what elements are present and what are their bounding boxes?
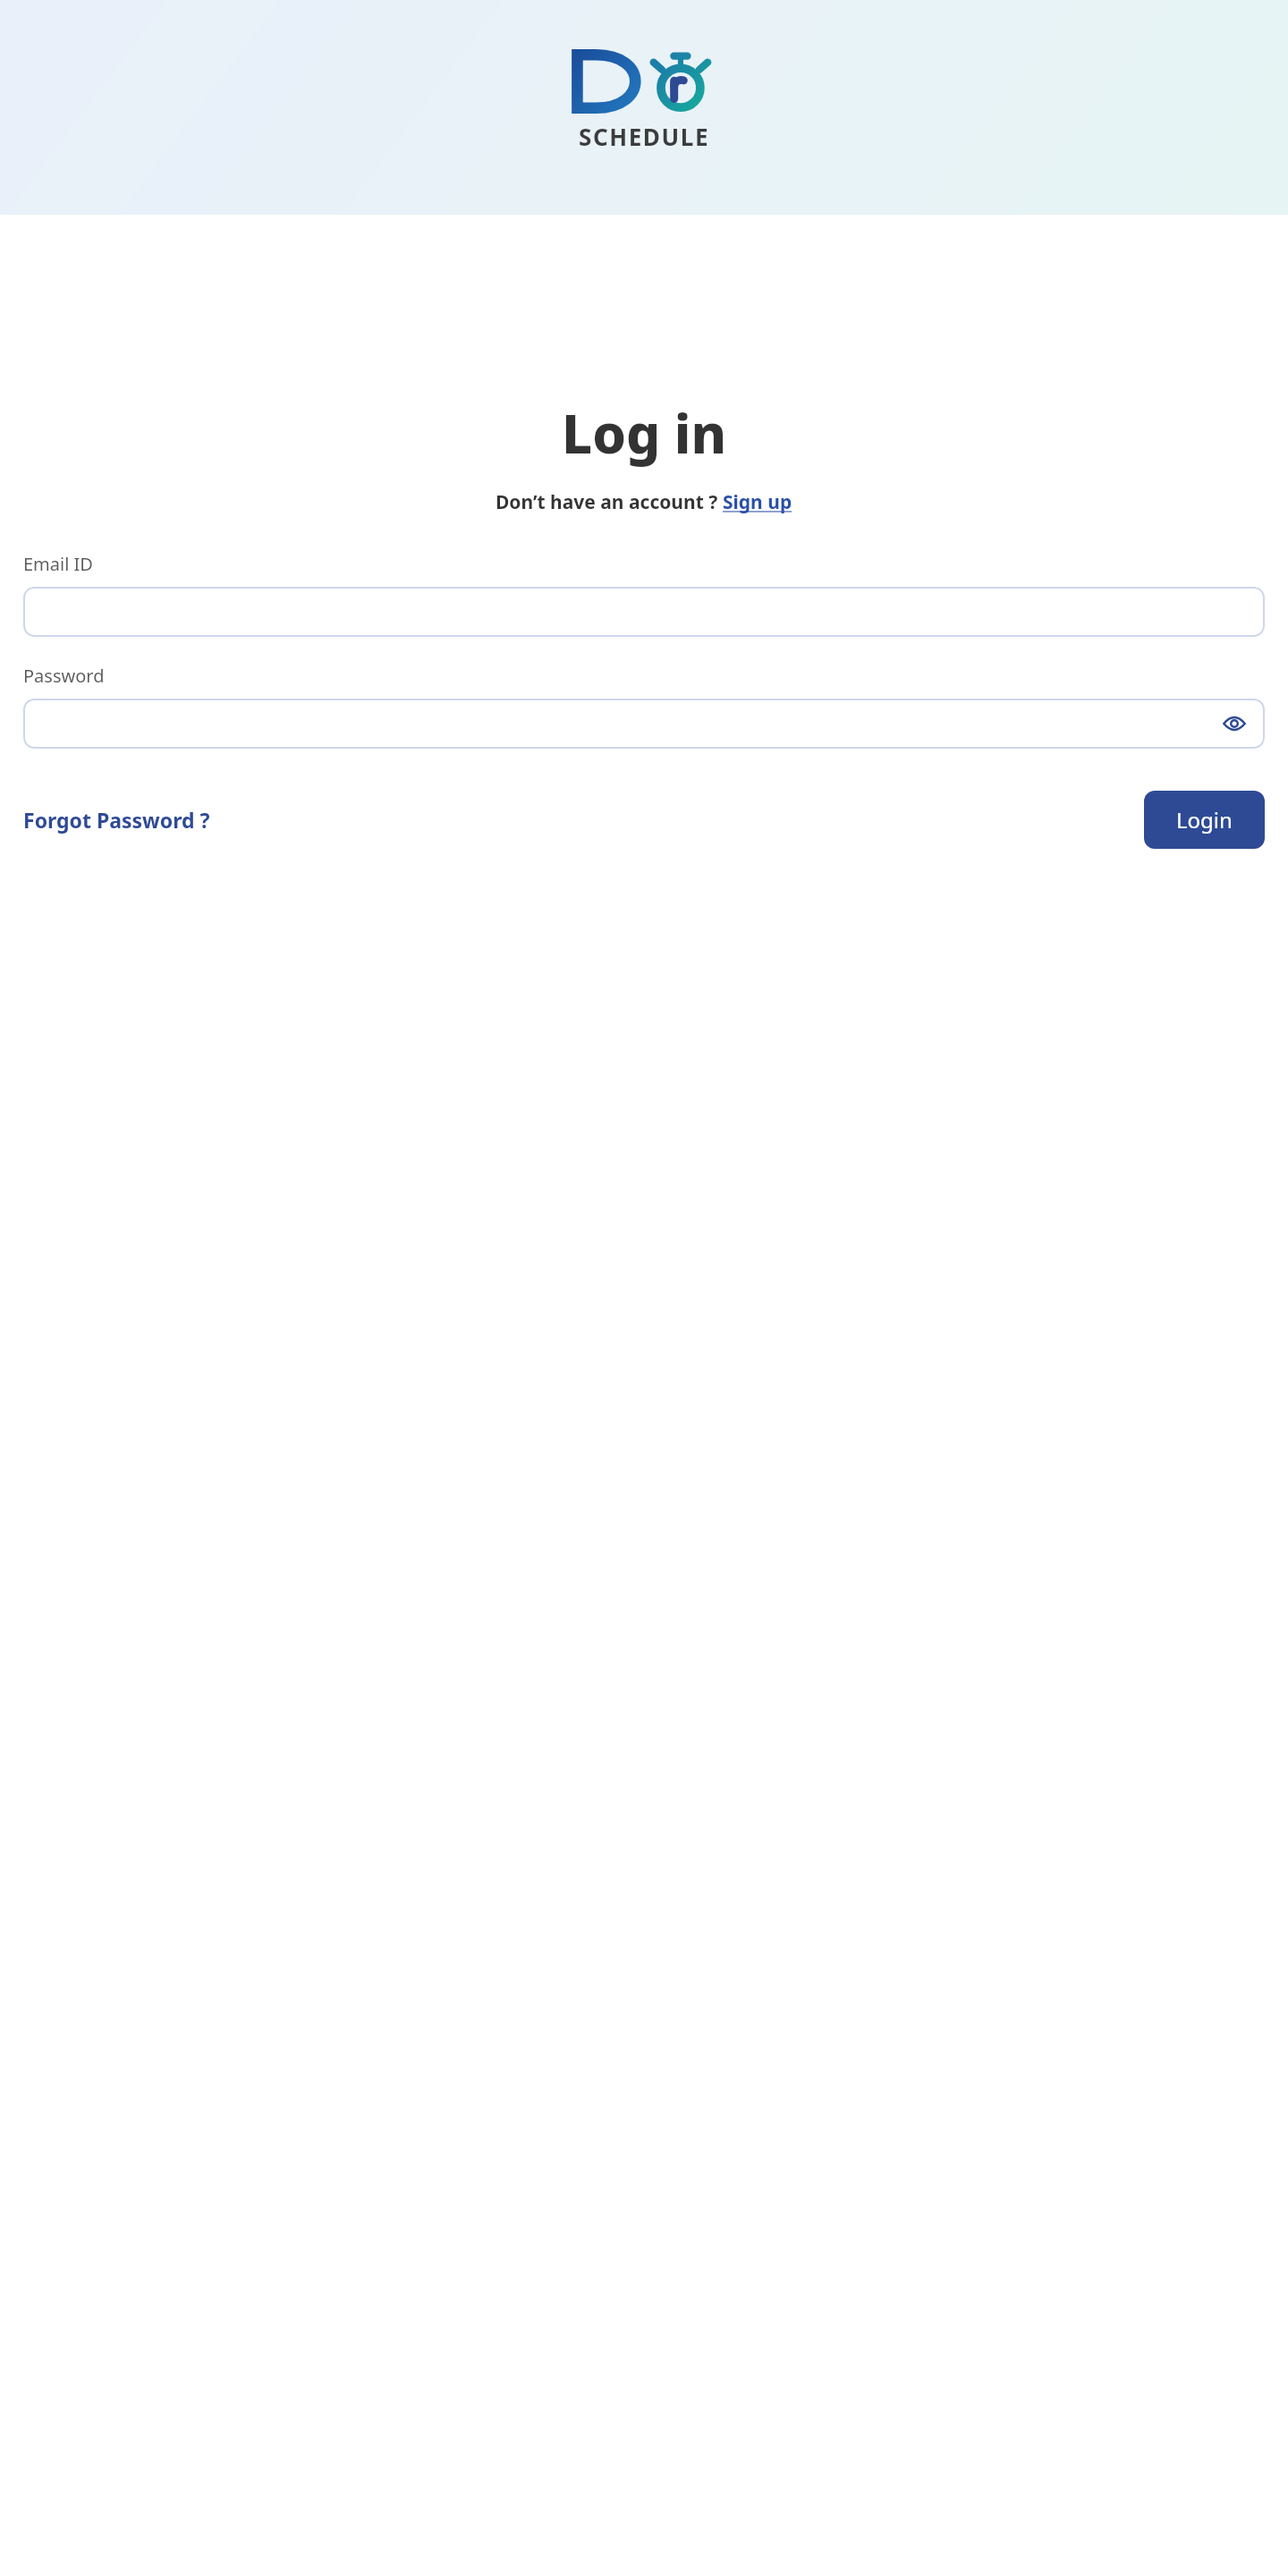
staticText: Password xyxy=(23,664,105,688)
button[interactable]: Email ID input xyxy=(23,587,1265,637)
staticText: Log in xyxy=(562,396,727,470)
staticText: Login xyxy=(1176,805,1233,835)
staticText: SCHEDULE xyxy=(579,121,710,152)
button[interactable]: Sign up xyxy=(723,489,792,515)
staticText: Don’t have an account ? xyxy=(496,489,723,515)
staticText: Email ID xyxy=(23,552,93,576)
button[interactable]: Show password xyxy=(1216,706,1252,741)
button[interactable]: Login xyxy=(1144,791,1265,849)
staticText: Sign up xyxy=(723,489,792,515)
button[interactable]: Forgot Password ? xyxy=(23,801,210,839)
button[interactable]: Password input xyxy=(23,699,1265,749)
staticText: Forgot Password ? xyxy=(23,806,210,834)
